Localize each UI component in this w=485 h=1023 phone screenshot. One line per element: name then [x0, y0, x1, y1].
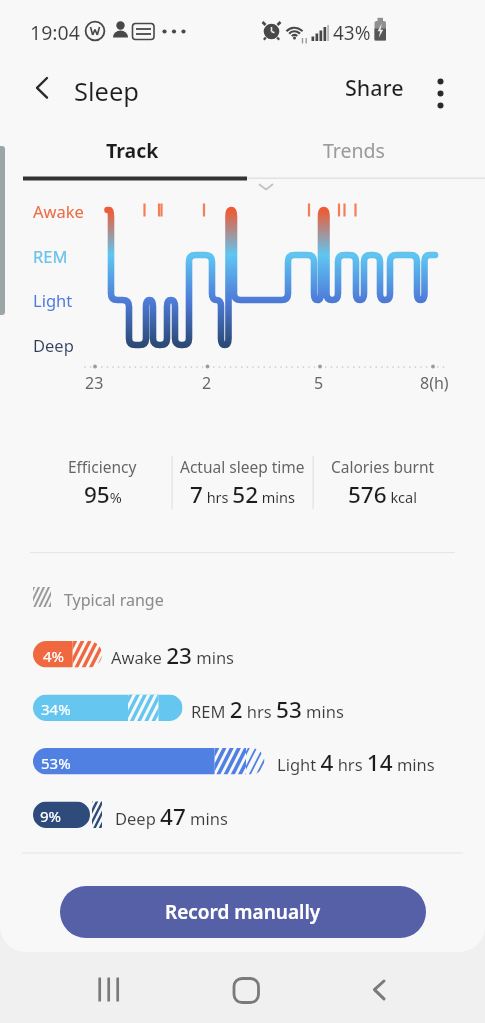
button[interactable]: [420, 64, 465, 114]
button[interactable]: Trends: [243, 132, 464, 168]
staticText: 53%: [41, 753, 71, 773]
staticText: REM: [33, 245, 68, 267]
button[interactable]: Record manually: [60, 886, 426, 938]
staticText: 43%: [333, 20, 371, 46]
staticText: Track: [106, 137, 159, 164]
staticText: 19:04: [30, 19, 80, 46]
staticText: Efficiency: [68, 456, 137, 477]
button[interactable]: [330, 958, 425, 1023]
staticText: 4%: [43, 646, 65, 666]
button[interactable]: [195, 958, 290, 1023]
staticText: 8(h): [420, 372, 449, 394]
staticText: Record manually: [165, 899, 321, 925]
staticText: Deep: [33, 334, 74, 356]
staticText: 95%: [84, 479, 122, 510]
staticText: Sleep: [74, 74, 140, 109]
staticText: Light 4 hrs 14 mins: [277, 747, 435, 778]
staticText: Calories burnt: [331, 456, 435, 477]
button[interactable]: [20, 64, 70, 112]
staticText: Typical range: [64, 589, 164, 611]
staticText: Trends: [323, 137, 385, 164]
button[interactable]: Share: [334, 64, 414, 110]
staticText: Deep 47 mins: [115, 801, 228, 832]
staticText: 576 kcal: [348, 479, 417, 510]
staticText: Awake: [33, 200, 84, 222]
staticText: REM 2 hrs 53 mins: [191, 694, 344, 725]
staticText: Actual sleep time: [180, 456, 305, 477]
staticText: Awake 23 mins: [111, 640, 234, 671]
button[interactable]: Track: [22, 132, 243, 168]
staticText: 9%: [40, 806, 62, 826]
staticText: 2: [202, 372, 212, 394]
staticText: Light: [33, 289, 73, 311]
button[interactable]: [60, 958, 155, 1023]
staticText: 23: [85, 372, 104, 394]
staticText: Share: [345, 73, 404, 102]
staticText: 5: [314, 372, 324, 394]
staticText: 7 hrs 52 mins: [190, 479, 296, 510]
staticText: 34%: [41, 699, 71, 719]
